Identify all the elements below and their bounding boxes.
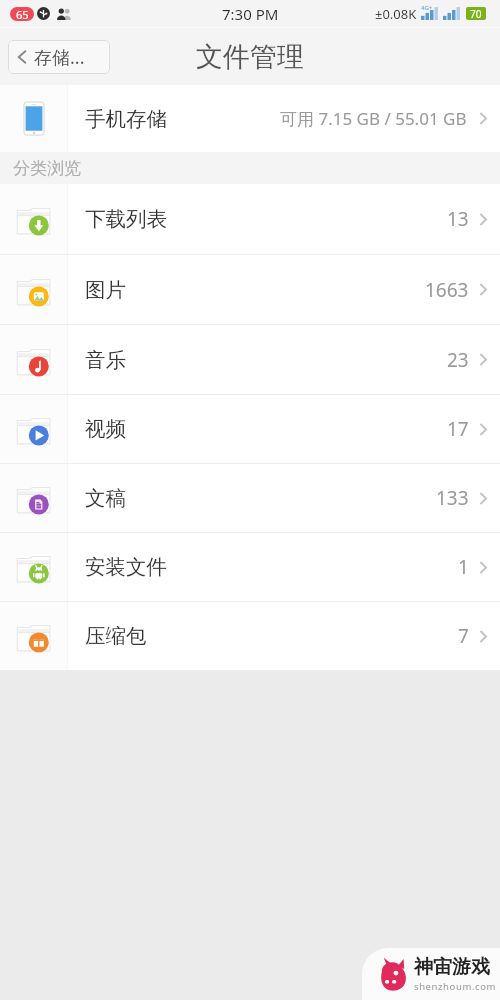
staticText: 音乐 xyxy=(85,347,126,373)
staticText: 安装文件 xyxy=(85,554,167,580)
staticText: 图片 xyxy=(85,277,126,303)
staticText: 存储... xyxy=(34,45,85,70)
staticText: 文件管理 xyxy=(196,40,304,74)
staticText: 13 xyxy=(447,206,469,232)
staticText: 4G+ xyxy=(421,4,433,12)
staticText: 手机存储 xyxy=(85,106,167,132)
staticText: 65 xyxy=(16,7,29,21)
button[interactable]: 音乐 xyxy=(0,325,500,394)
button[interactable]: 下载列表 xyxy=(0,184,500,254)
button[interactable]: 手机存储 xyxy=(0,85,500,152)
staticText: 神宙游戏 xyxy=(414,955,490,979)
staticText: 下载列表 xyxy=(85,206,167,232)
staticText: 7:30 PM xyxy=(222,4,279,24)
staticText: 1 xyxy=(458,554,469,580)
staticText: ±0.08K xyxy=(375,5,417,23)
button[interactable]: 安装文件 xyxy=(0,533,500,601)
staticText: 可用 7.15 GB / 55.01 GB xyxy=(280,107,467,130)
staticText: 70 xyxy=(470,7,482,20)
staticText: 分类浏览 xyxy=(13,158,81,179)
button[interactable]: 压缩包 xyxy=(0,602,500,670)
staticText: 17 xyxy=(447,416,469,442)
staticText: shenzhoum.com xyxy=(414,980,497,993)
staticText: 视频 xyxy=(85,416,126,442)
staticText: 1663 xyxy=(425,277,469,303)
staticText: 压缩包 xyxy=(85,623,147,649)
button[interactable]: 图片 xyxy=(0,255,500,324)
button[interactable]: 视频 xyxy=(0,395,500,463)
staticText: 23 xyxy=(447,347,469,373)
button[interactable]: 存储... xyxy=(8,40,110,74)
button[interactable]: 文稿 xyxy=(0,464,500,532)
staticText: 文稿 xyxy=(85,485,126,511)
staticText: 7 xyxy=(458,623,469,649)
staticText: 133 xyxy=(436,485,469,511)
